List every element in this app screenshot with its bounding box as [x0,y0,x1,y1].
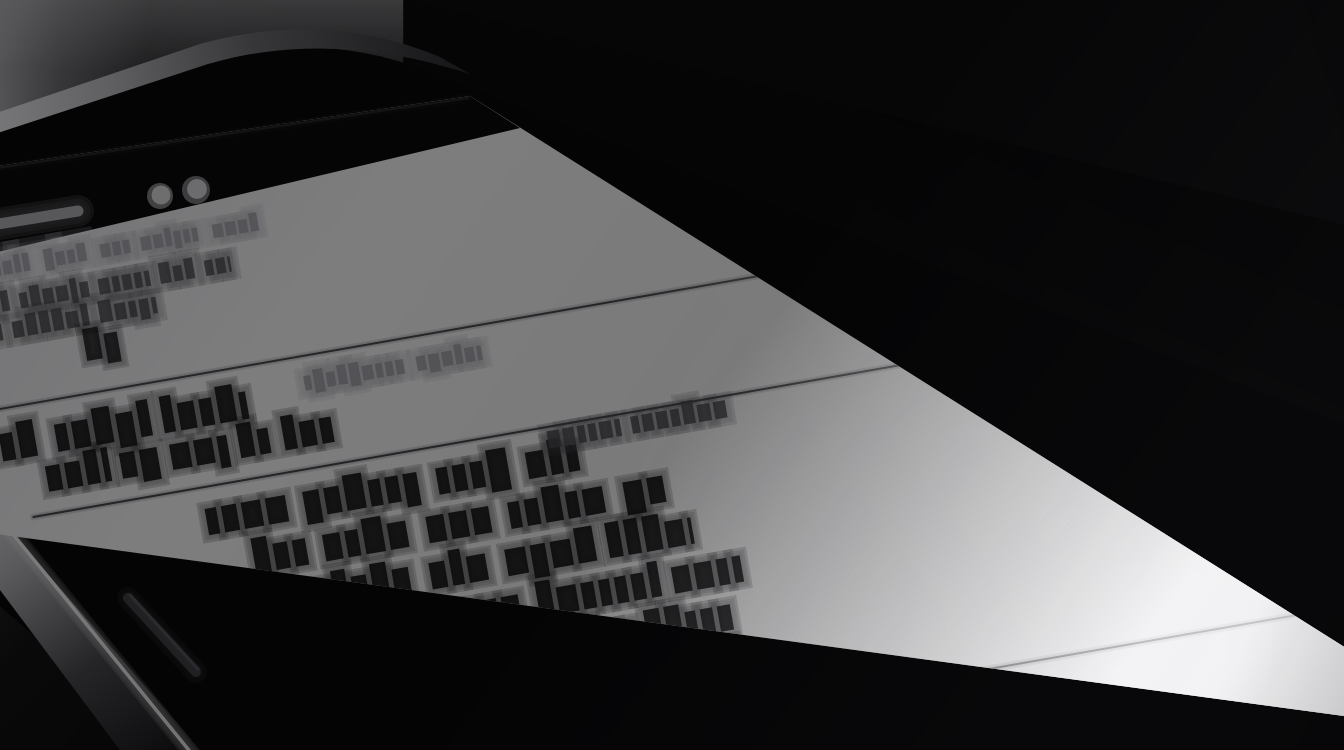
button[interactable]: Phone settings list, angled product phot… [0,0,1344,750]
